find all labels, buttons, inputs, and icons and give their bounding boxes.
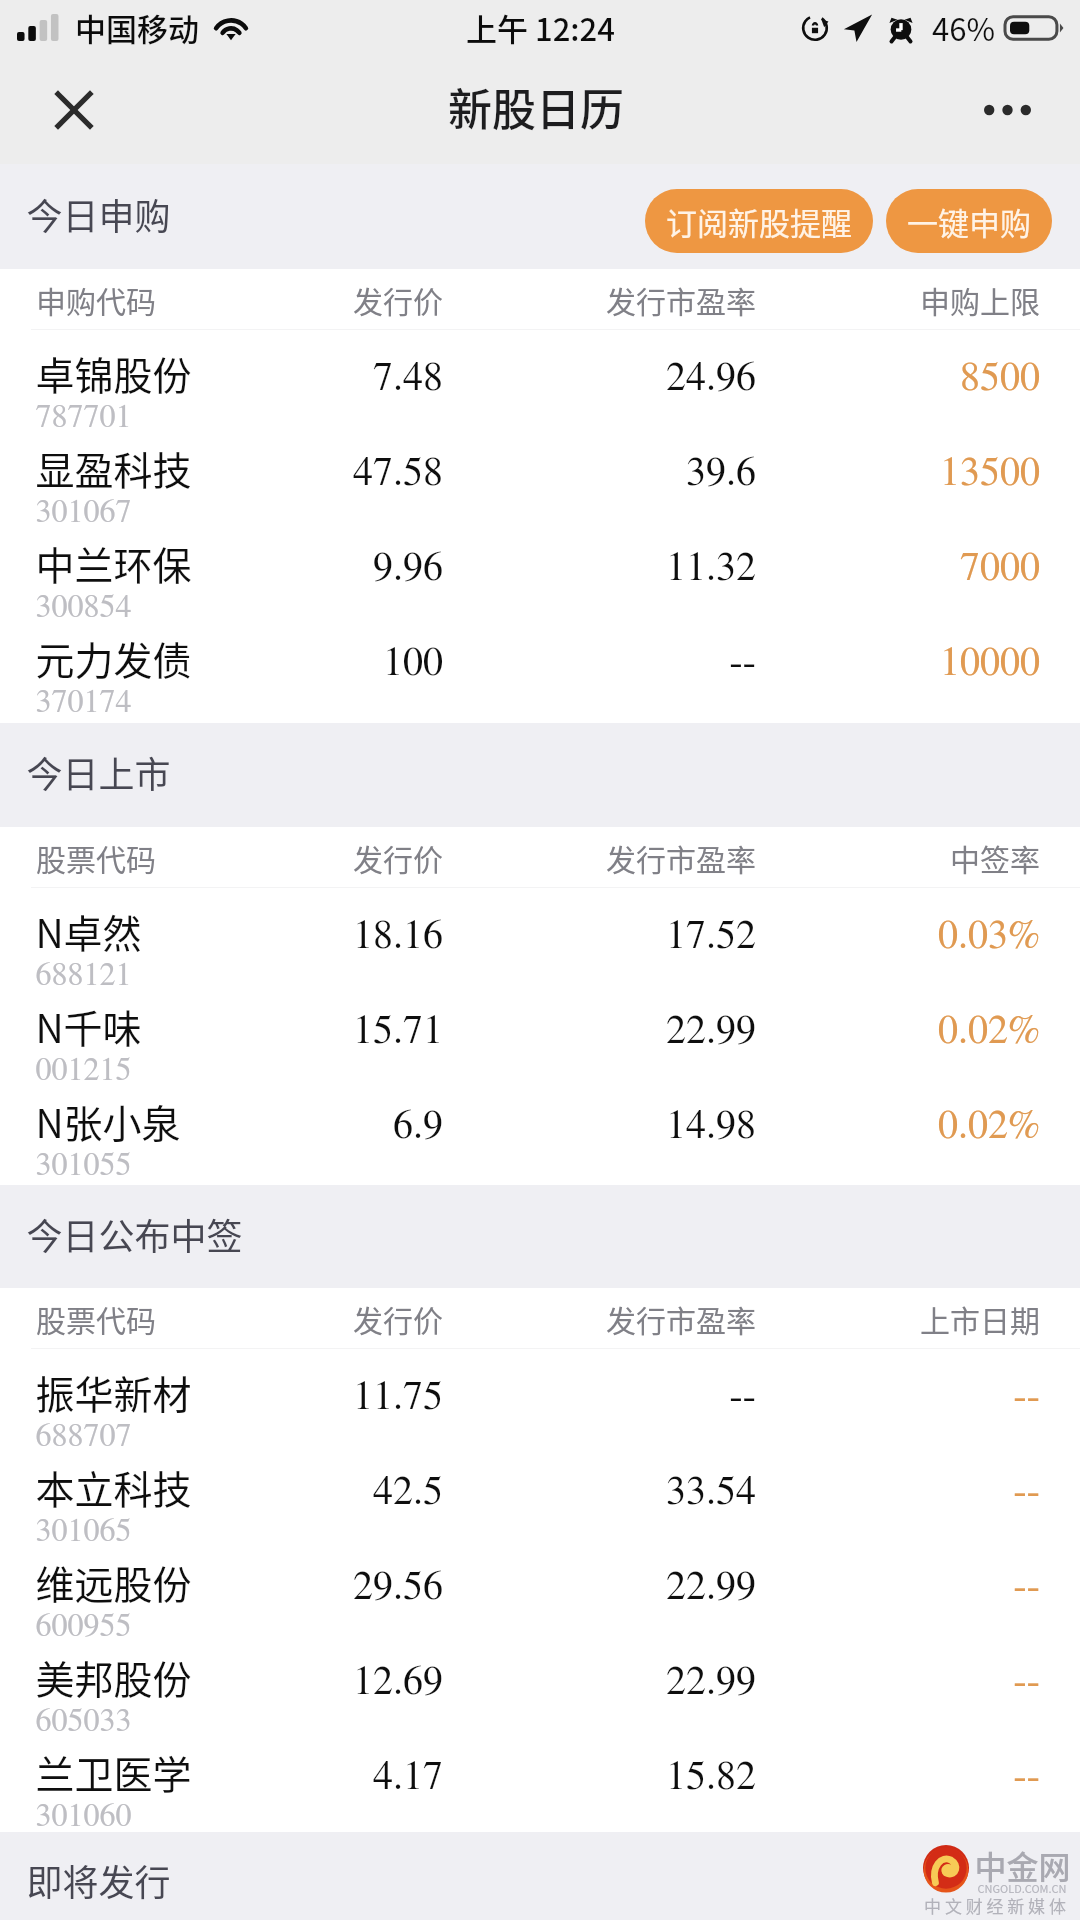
staticText: 100 — [383, 643, 443, 683]
staticText: 13500 — [940, 453, 1040, 493]
staticText: 29.56 — [353, 1567, 443, 1607]
staticText: 申购上限 — [920, 278, 1040, 321]
staticText: 发行市盈率 — [606, 1297, 756, 1340]
staticText: 美邦股份 — [35, 1649, 192, 1705]
staticText: 9.96 — [373, 548, 443, 588]
staticText: 18.16 — [353, 916, 443, 956]
staticText: 今日申购 — [26, 188, 171, 240]
staticText: 11.32 — [666, 548, 756, 588]
button[interactable]: Close — [38, 74, 110, 146]
staticText: 中签率 — [950, 836, 1040, 879]
staticText: 发行价 — [353, 836, 443, 879]
staticText: -- — [1013, 1662, 1040, 1702]
staticText: 中 文 财 经 新 媒 体 — [924, 1893, 1066, 1918]
staticText: 6.9 — [393, 1106, 443, 1146]
staticText: 42.5 — [373, 1472, 443, 1512]
staticText: 301055 — [35, 1149, 132, 1181]
button[interactable]: 订阅新股提醒 — [645, 189, 873, 253]
staticText: 中金网 — [974, 1842, 1071, 1888]
staticText: 688707 — [35, 1420, 132, 1452]
staticText: 688121 — [35, 959, 132, 991]
staticText: 中国移动 — [75, 5, 199, 50]
staticText: 上午 12:24 — [466, 5, 615, 50]
button[interactable]: 中兰环保 — [0, 520, 1080, 615]
button[interactable]: 美邦股份 — [0, 1634, 1080, 1729]
staticText: 申购代码 — [36, 278, 156, 321]
staticText: 卓锦股份 — [35, 345, 192, 401]
staticText: 新股日历 — [448, 75, 624, 139]
staticText: 15.82 — [666, 1757, 756, 1797]
staticText: N张小泉 — [35, 1093, 181, 1149]
staticText: 7000 — [960, 548, 1040, 588]
button[interactable]: 振华新材 — [0, 1349, 1080, 1444]
button[interactable]: N千味 — [0, 983, 1080, 1078]
staticText: 今日公布中签 — [26, 1208, 243, 1260]
staticText: 46% — [932, 5, 995, 50]
button[interactable]: 元力发债 — [0, 615, 1080, 710]
staticText: 0.02% — [938, 1011, 1040, 1051]
staticText: 0.03% — [938, 916, 1040, 956]
staticText: 12.69 — [353, 1662, 443, 1702]
staticText: 787701 — [35, 401, 132, 433]
staticText: 显盈科技 — [35, 440, 192, 496]
staticText: 33.54 — [666, 1472, 756, 1512]
staticText: N卓然 — [35, 903, 142, 959]
button[interactable]: More options — [966, 79, 1048, 141]
staticText: 一键申购 — [907, 199, 1031, 244]
staticText: 4.17 — [373, 1757, 443, 1797]
staticText: 发行市盈率 — [606, 278, 756, 321]
staticText: 10000 — [940, 643, 1040, 683]
staticText: 中兰环保 — [35, 535, 192, 591]
staticText: N千味 — [35, 998, 142, 1054]
staticText: -- — [1013, 1567, 1040, 1607]
staticText: 17.52 — [666, 916, 756, 956]
staticText: 发行市盈率 — [606, 836, 756, 879]
staticText: 8500 — [960, 358, 1040, 398]
staticText: 7.48 — [373, 358, 443, 398]
staticText: 今日上市 — [26, 746, 171, 798]
staticText: 22.99 — [666, 1567, 756, 1607]
staticText: 47.58 — [353, 453, 443, 493]
staticText: 39.6 — [686, 453, 756, 493]
staticText: 301067 — [35, 496, 132, 528]
staticText: 兰卫医学 — [35, 1744, 192, 1800]
staticText: 300854 — [35, 591, 132, 623]
staticText: 22.99 — [666, 1662, 756, 1702]
button[interactable]: N张小泉 — [0, 1078, 1080, 1173]
staticText: 605033 — [35, 1705, 132, 1737]
staticText: 本立科技 — [35, 1459, 192, 1515]
staticText: 0.02% — [938, 1106, 1040, 1146]
staticText: CNGOLD.COM.CN — [977, 1880, 1067, 1896]
button[interactable]: 兰卫医学 — [0, 1729, 1080, 1824]
staticText: 370174 — [35, 686, 132, 718]
button[interactable]: 一键申购 — [886, 189, 1052, 253]
staticText: 15.71 — [353, 1011, 443, 1051]
staticText: 11.75 — [353, 1377, 443, 1417]
staticText: -- — [1013, 1377, 1040, 1417]
button[interactable]: 卓锦股份 — [0, 330, 1080, 425]
staticText: 001215 — [35, 1054, 132, 1086]
staticText: 元力发债 — [35, 630, 192, 686]
staticText: 301065 — [35, 1515, 132, 1547]
staticText: 上市日期 — [920, 1297, 1040, 1340]
staticText: 24.96 — [666, 358, 756, 398]
staticText: 发行价 — [353, 1297, 443, 1340]
staticText: 订阅新股提醒 — [666, 199, 852, 244]
button[interactable]: N卓然 — [0, 888, 1080, 983]
staticText: 22.99 — [666, 1011, 756, 1051]
staticText: -- — [1013, 1472, 1040, 1512]
staticText: 维远股份 — [35, 1554, 192, 1610]
staticText: 振华新材 — [35, 1364, 192, 1420]
staticText: -- — [729, 1377, 756, 1417]
staticText: 股票代码 — [36, 1297, 156, 1340]
staticText: -- — [729, 643, 756, 683]
staticText: 14.98 — [666, 1106, 756, 1146]
button[interactable]: 显盈科技 — [0, 425, 1080, 520]
button[interactable]: 维远股份 — [0, 1539, 1080, 1634]
button[interactable]: 本立科技 — [0, 1444, 1080, 1539]
staticText: 600955 — [35, 1610, 132, 1642]
staticText: 股票代码 — [36, 836, 156, 879]
staticText: 301060 — [35, 1800, 132, 1832]
staticText: 发行价 — [353, 278, 443, 321]
staticText: 即将发行 — [26, 1854, 171, 1906]
